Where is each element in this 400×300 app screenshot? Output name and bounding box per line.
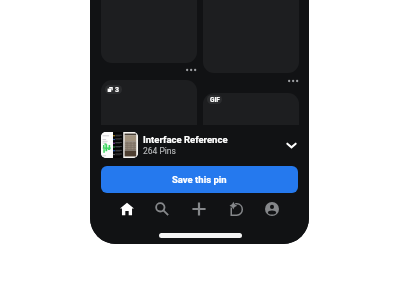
button[interactable]: Expand board options bbox=[283, 137, 299, 153]
button[interactable]: More options bbox=[186, 66, 200, 74]
staticText: 264 Pins bbox=[143, 146, 176, 156]
button[interactable]: Updates bbox=[226, 199, 246, 219]
button[interactable]: Pin with 3 images bbox=[101, 80, 197, 150]
staticText: GIF bbox=[210, 96, 220, 104]
button[interactable]: Interface Reference bbox=[90, 130, 309, 160]
button[interactable]: Profile bbox=[262, 199, 282, 219]
button[interactable]: GIF pin bbox=[203, 93, 299, 153]
button[interactable]: Home bbox=[117, 199, 137, 219]
staticText: 3 bbox=[115, 86, 120, 94]
button[interactable]: More options bbox=[288, 77, 302, 85]
staticText: Save this pin bbox=[172, 174, 227, 185]
button[interactable]: Search bbox=[152, 199, 172, 219]
button[interactable]: Save this pin bbox=[101, 166, 298, 193]
button[interactable]: Create bbox=[189, 199, 209, 219]
staticText: Interface Reference bbox=[143, 134, 228, 145]
